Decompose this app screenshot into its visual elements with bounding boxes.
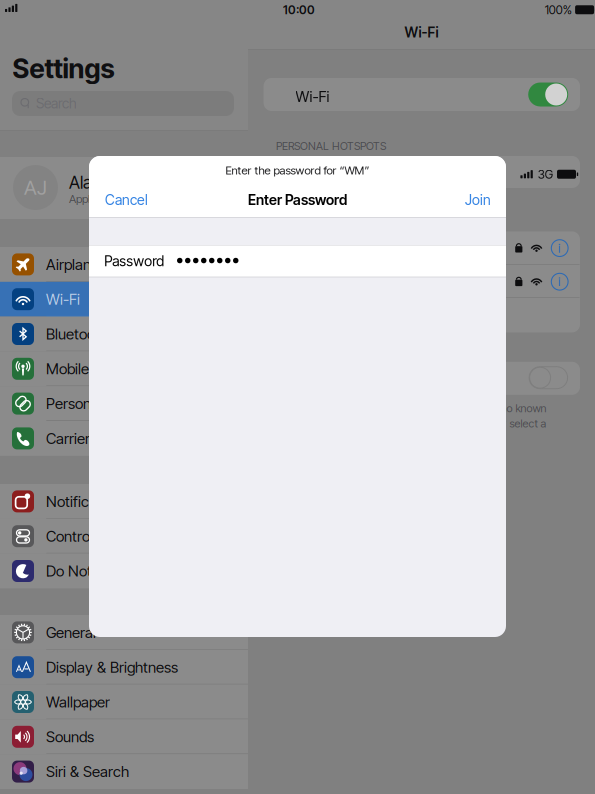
staticText: Enter Password	[248, 191, 347, 208]
staticText: 10:00	[283, 3, 315, 17]
staticText: Do Not Disturb	[46, 562, 142, 580]
button[interactable]: Carrier	[0, 421, 248, 456]
staticText: Join	[465, 191, 491, 208]
staticText: Bluetooth	[46, 325, 108, 343]
staticText: Wi-Fi	[296, 87, 330, 106]
button[interactable]: Display & Brightness	[0, 650, 248, 685]
staticText: Apple ID, iCloud, iTunes & App Store	[69, 192, 243, 206]
staticText: Display & Brightness	[46, 658, 178, 676]
staticText: Wi-Fi	[404, 24, 438, 41]
staticText: Mobile Data	[46, 360, 124, 378]
button[interactable]: AJ	[0, 157, 248, 219]
button[interactable]: Wallpaper	[0, 685, 248, 719]
staticText: i	[558, 273, 561, 289]
staticText: Notifications	[46, 492, 128, 510]
staticText: PERSONAL HOTSPOTS	[276, 139, 386, 153]
button[interactable]: Notifications	[0, 484, 248, 519]
staticText: Settings	[12, 52, 114, 85]
staticText: networks are available, you will have to…	[280, 417, 547, 430]
button[interactable]: Mobile Data	[0, 351, 248, 386]
button[interactable]: Airplane Mode	[0, 247, 248, 282]
button[interactable]: Network information	[551, 273, 568, 290]
button[interactable]: Sounds	[0, 719, 248, 754]
button[interactable]: Cancel	[99, 186, 154, 213]
staticText: General	[46, 623, 96, 641]
staticText: 100%	[545, 2, 572, 17]
staticText: 3G	[538, 167, 553, 181]
staticText: Known networks will be joined automatica…	[280, 401, 547, 415]
staticText: Cancel	[105, 191, 148, 208]
staticText: Search	[36, 95, 77, 112]
button[interactable]: General	[0, 615, 248, 650]
button[interactable]: Bluetooth	[0, 317, 248, 351]
staticText: Sounds	[46, 728, 94, 746]
staticText: i	[558, 240, 561, 256]
staticText: Alan Jones	[69, 172, 150, 193]
staticText: Personal Hotspot	[46, 394, 157, 413]
button[interactable]: Siri & Search	[0, 754, 248, 789]
staticText: Wi-Fi	[46, 290, 80, 308]
button[interactable]: Network information	[551, 240, 568, 256]
staticText: Airplane Mode	[46, 255, 140, 273]
button[interactable]: Do Not Disturb	[0, 554, 248, 588]
staticText: Wallpaper	[46, 693, 110, 711]
button[interactable]: Wi-Fi	[0, 282, 248, 317]
button[interactable]: Personal Hotspot	[0, 386, 248, 421]
staticText: Password	[104, 253, 164, 270]
staticText: Control Centre	[46, 527, 141, 545]
staticText: Carrier	[46, 429, 90, 447]
staticText: Siri & Search	[46, 762, 129, 781]
button[interactable]: Join	[459, 186, 497, 213]
staticText: Enter the password for “WM”	[225, 163, 369, 177]
button[interactable]: Control Centre	[0, 519, 248, 554]
staticText: AJ	[24, 175, 47, 200]
